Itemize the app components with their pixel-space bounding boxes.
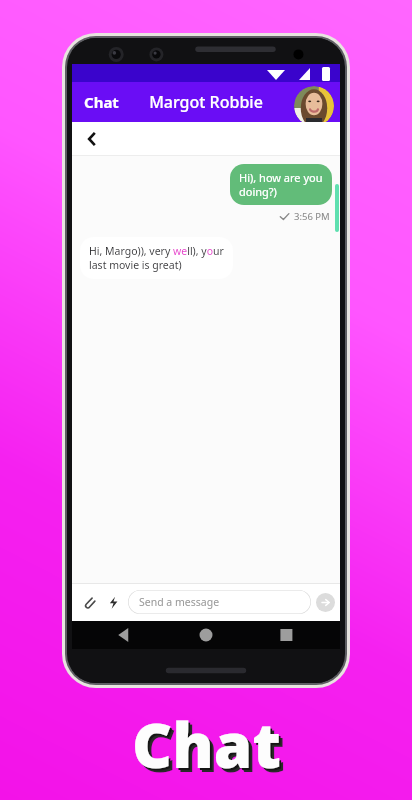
staticText: 3:56 PM	[294, 210, 330, 223]
staticText: Chat	[132, 702, 281, 786]
staticText: Chat	[136, 706, 285, 790]
button[interactable]: Contact profile photo	[294, 86, 334, 126]
button[interactable]: Send a message	[128, 590, 311, 614]
staticText: Chat	[134, 704, 283, 788]
staticText: Send a message	[139, 595, 220, 609]
staticText: Hi), how are you doing?)	[239, 170, 323, 199]
button[interactable]: Hi, Margo)), very well), your last movie…	[80, 237, 233, 279]
button[interactable]: Hi), how are you doing?)	[230, 164, 332, 205]
staticText: Hi, Margo)), very well), your last movie…	[89, 244, 224, 272]
staticText: Margot Robbie	[149, 91, 263, 113]
button[interactable]: Attach file	[77, 590, 101, 614]
staticText: Chat	[84, 92, 119, 112]
button[interactable]: Chat	[80, 88, 123, 116]
button[interactable]: Send	[316, 593, 335, 612]
button[interactable]: Back	[78, 125, 106, 153]
button[interactable]: Quick action	[101, 590, 125, 614]
